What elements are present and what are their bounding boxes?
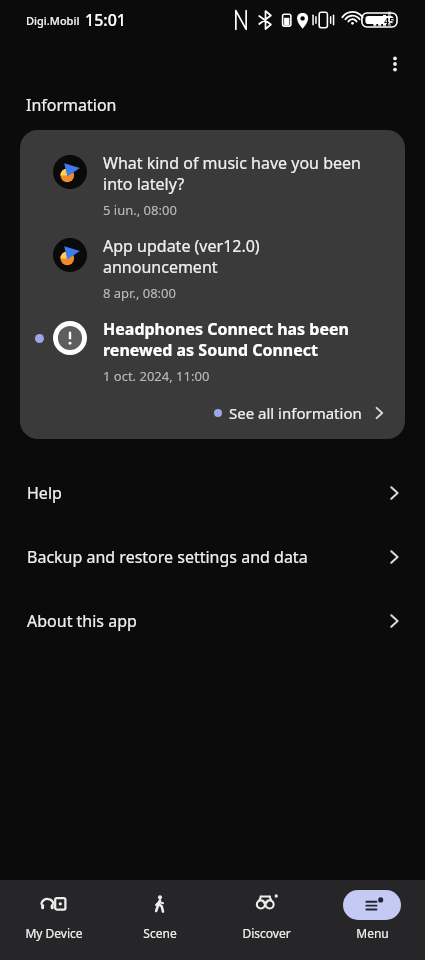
staticText: 45 — [384, 14, 395, 26]
staticText: See all information — [229, 403, 362, 423]
staticText: 5 iun., 08:00 — [103, 201, 177, 219]
button[interactable]: App update (ver12.0) announcement — [20, 227, 405, 310]
button[interactable]: About this app — [0, 589, 425, 653]
staticText: My Device — [25, 925, 83, 941]
button[interactable]: Headphones Connect has been renewed as S… — [20, 310, 405, 393]
staticText: Digi.Mobil — [26, 13, 80, 28]
staticText: Information — [26, 94, 117, 116]
button[interactable]: What kind of music have you been into la… — [20, 144, 405, 227]
staticText: 15:01 — [85, 9, 126, 31]
staticText: 1 oct. 2024, 11:00 — [103, 367, 210, 385]
button[interactable]: Help — [0, 461, 425, 525]
button[interactable]: Backup and restore settings and data — [0, 525, 425, 589]
staticText: 8 apr., 08:00 — [103, 284, 176, 302]
button[interactable]: See all information — [20, 393, 405, 427]
button[interactable]: Menu — [319, 880, 425, 960]
staticText: Menu — [356, 925, 389, 941]
button[interactable]: Scene — [107, 880, 213, 960]
staticText: Scene — [143, 925, 177, 941]
button[interactable]: Discover — [213, 880, 319, 960]
staticText: Discover — [242, 925, 291, 941]
staticText: Headphones Connect has been renewed as S… — [103, 318, 349, 361]
staticText: Help — [27, 482, 385, 504]
button[interactable]: My Device — [0, 880, 107, 960]
button[interactable]: More options — [373, 42, 417, 86]
staticText: App update (ver12.0) announcement — [103, 235, 260, 278]
staticText: What kind of music have you been into la… — [103, 152, 361, 195]
staticText: About this app — [27, 610, 385, 632]
staticText: Backup and restore settings and data — [27, 546, 385, 568]
